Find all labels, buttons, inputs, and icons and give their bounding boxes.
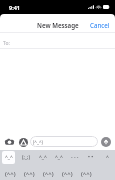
staticText: (^^) (81, 170, 92, 178)
staticText: 9:41 (9, 4, 20, 11)
staticText: (^^) (24, 170, 35, 178)
staticText: ^_^ (5, 154, 13, 161)
button[interactable]: (^_^) (30, 136, 98, 147)
button[interactable]: (^^) (79, 167, 94, 180)
button[interactable]: ^_^ (36, 151, 49, 164)
button[interactable]: Send (101, 137, 111, 147)
button[interactable]: ^_^ (53, 151, 65, 164)
button[interactable]: (;_;) (19, 151, 32, 164)
button[interactable]: Cancel (85, 14, 115, 32)
button[interactable]: ^_^ (2, 151, 15, 164)
staticText: ^_^ (39, 154, 47, 161)
staticText: (;_;) (22, 154, 30, 161)
staticText: • • (88, 154, 94, 161)
button[interactable]: (^^) (2, 167, 18, 180)
staticText: - - - (71, 154, 79, 161)
staticText: (^^) (5, 170, 16, 178)
button[interactable]: (^^) (41, 167, 56, 180)
button[interactable]: App Store (16, 135, 30, 149)
staticText: To: (3, 40, 10, 47)
staticText: Cancel (90, 21, 110, 29)
button[interactable]: • • (85, 151, 97, 164)
button[interactable]: ^ (101, 151, 113, 164)
staticText: (^_^) (33, 139, 43, 145)
button[interactable]: - - - (69, 151, 81, 164)
staticText: ^_^ (55, 154, 63, 161)
staticText: ^ (106, 154, 109, 161)
button[interactable]: (^^) (60, 167, 75, 180)
staticText: (^^) (62, 170, 73, 178)
staticText: (^^) (43, 170, 54, 178)
button[interactable]: Camera (2, 135, 16, 149)
button[interactable]: To: (0, 33, 115, 48)
staticText: New Message (37, 21, 79, 29)
button[interactable]: (^^) (22, 167, 37, 180)
